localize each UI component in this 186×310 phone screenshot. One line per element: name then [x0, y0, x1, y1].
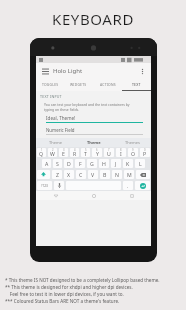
staticText: W: [50, 150, 55, 157]
staticText: D: [67, 160, 71, 167]
staticText: P: [143, 150, 147, 157]
staticText: I: [120, 150, 122, 157]
button[interactable]: B: [100, 170, 110, 179]
staticText: V: [91, 171, 95, 178]
button[interactable]: J: [111, 159, 121, 168]
button[interactable]: 1: [37, 148, 46, 157]
button[interactable]: Themes: [113, 138, 151, 147]
button[interactable]: M: [124, 170, 134, 179]
staticText: B: [103, 171, 107, 178]
staticText: * This theme IS NOT designed to be a com…: [5, 277, 160, 283]
button[interactable]: Backspace: [136, 170, 150, 179]
staticText: G: [90, 160, 94, 167]
button[interactable]: S: [53, 159, 62, 168]
button[interactable]: D: [64, 159, 73, 168]
staticText: S: [56, 160, 59, 167]
staticText: 2: [52, 148, 54, 152]
staticText: F: [79, 160, 82, 167]
staticText: WIDGETS: [70, 82, 87, 87]
button[interactable]: G: [87, 159, 97, 168]
staticText: ACTIONS: [100, 82, 116, 87]
button[interactable]: 2: [48, 148, 57, 157]
button[interactable]: 0: [140, 148, 150, 157]
staticText: A: [45, 160, 49, 167]
button[interactable]: .: [123, 181, 133, 190]
staticText: Numeric Field: [46, 127, 75, 133]
staticText: Holo Light: [53, 67, 83, 75]
staticText: 3: [63, 148, 65, 152]
staticText: H: [102, 160, 106, 167]
staticText: J: [115, 160, 117, 167]
button[interactable]: V: [88, 170, 98, 179]
staticText: Z: [56, 171, 59, 178]
staticText: TEXT INPUT: [40, 94, 62, 99]
staticText: X: [67, 171, 71, 178]
button[interactable]: Back: [36, 191, 75, 200]
button[interactable]: ACTIONS: [93, 79, 122, 90]
staticText: 0: [144, 148, 146, 152]
staticText: Y: [96, 150, 99, 157]
staticText: U: [107, 150, 111, 157]
staticText: K: [126, 160, 130, 167]
staticText: O: [131, 150, 136, 157]
staticText: Ideal, Theme!: [46, 115, 76, 121]
button[interactable]: 8: [116, 148, 126, 157]
staticText: You can test your keyboard and the text …: [44, 102, 130, 112]
button[interactable]: 4: [70, 148, 79, 157]
staticText: ?123: [41, 184, 48, 188]
button[interactable]: H: [99, 159, 109, 168]
button[interactable]: Open navigation drawer: [40, 66, 50, 76]
staticText: T: [84, 150, 87, 157]
button[interactable]: Recent apps: [113, 191, 151, 200]
button[interactable]: Theme: [36, 138, 75, 147]
staticText: 1: [41, 148, 43, 152]
staticText: L: [139, 160, 142, 167]
button[interactable]: Theme: [75, 138, 113, 147]
staticText: TEXT: [132, 82, 141, 87]
staticText: 8: [120, 148, 122, 152]
button[interactable]: X: [64, 170, 74, 179]
button[interactable]: TOGGLES: [36, 79, 64, 90]
button[interactable]: More options: [137, 66, 147, 76]
button[interactable]: 5: [81, 148, 90, 157]
button[interactable]: 3: [59, 148, 68, 157]
button[interactable]: WIDGETS: [64, 79, 93, 90]
button[interactable]: Ideal, Theme!: [46, 115, 143, 123]
button[interactable]: N: [112, 170, 122, 179]
staticText: .: [127, 183, 129, 189]
staticText: ** This theme is designed for xhdpi and …: [5, 284, 133, 290]
staticText: M: [127, 171, 132, 178]
button[interactable]: L: [135, 159, 145, 168]
staticText: Themes: [125, 140, 140, 145]
staticText: 9: [132, 148, 134, 152]
button[interactable]: Z: [52, 170, 62, 179]
staticText: 4: [74, 148, 76, 152]
staticText: KEYBOARD: [52, 9, 134, 29]
button[interactable]: Voice input: [54, 181, 64, 190]
button[interactable]: Enter: [135, 181, 150, 190]
button[interactable]: TEXT: [122, 79, 151, 90]
button[interactable]: K: [123, 159, 133, 168]
button[interactable]: Numeric Field: [46, 127, 143, 135]
staticText: 7: [108, 148, 110, 152]
staticText: Feel free to test it in lower dpi device…: [5, 291, 124, 297]
button[interactable]: ?123: [37, 181, 52, 190]
staticText: Q: [39, 150, 44, 157]
staticText: Theme: [49, 140, 62, 145]
button[interactable]: 7: [104, 148, 114, 157]
staticText: *** Coloured Status Bars ARE NOT a theme…: [5, 298, 120, 304]
button[interactable]: 9: [128, 148, 138, 157]
staticText: E: [62, 150, 65, 157]
staticText: C: [79, 171, 83, 178]
button[interactable]: A: [42, 159, 51, 168]
button[interactable]: C: [76, 170, 86, 179]
button[interactable]: Shift: [37, 170, 50, 179]
button[interactable]: F: [75, 159, 85, 168]
button[interactable]: 6: [92, 148, 102, 157]
staticText: 5: [85, 148, 87, 152]
staticText: Theme: [87, 140, 101, 145]
staticText: TOGGLES: [42, 82, 59, 87]
staticText: 6: [96, 148, 98, 152]
button[interactable]: Home: [75, 191, 113, 200]
